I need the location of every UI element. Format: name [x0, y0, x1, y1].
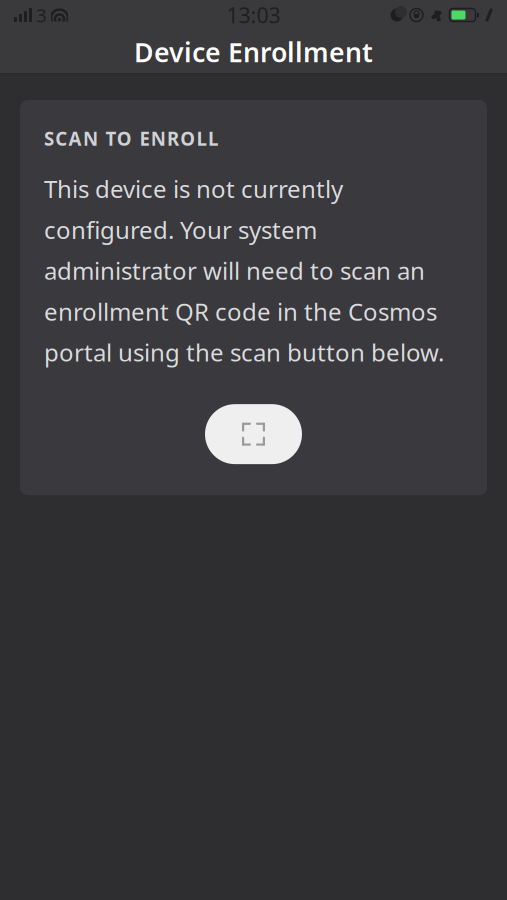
staticText: 13:03 — [226, 1, 280, 29]
button[interactable]: Scan QR code — [205, 404, 302, 464]
staticText: Device Enrollment — [134, 34, 373, 70]
staticText: This device is not currently configured.… — [44, 173, 444, 368]
staticText: SCAN TO ENROLL — [44, 126, 218, 151]
staticText: 3 — [36, 3, 47, 27]
